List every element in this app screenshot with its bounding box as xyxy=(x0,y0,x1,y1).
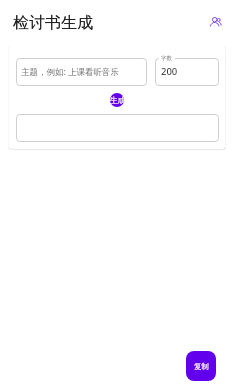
staticText: 复制 xyxy=(194,362,209,371)
button[interactable]: 复制 xyxy=(186,351,216,381)
staticText: 字数 xyxy=(161,55,173,62)
staticText: 主题，例如: 上课看听音乐 xyxy=(21,66,119,78)
staticText: 生成 xyxy=(110,95,124,105)
button[interactable]: 主题，例如: 上课看听音乐 xyxy=(16,58,147,86)
button[interactable] xyxy=(155,58,219,86)
staticText: 检讨书生成 xyxy=(13,13,93,33)
button[interactable]: 生成 xyxy=(110,93,124,107)
button[interactable] xyxy=(16,114,219,142)
staticText: 检讨书生成 xyxy=(13,13,93,33)
button[interactable]: Contacts xyxy=(204,13,228,37)
staticText: 200 xyxy=(161,65,178,78)
